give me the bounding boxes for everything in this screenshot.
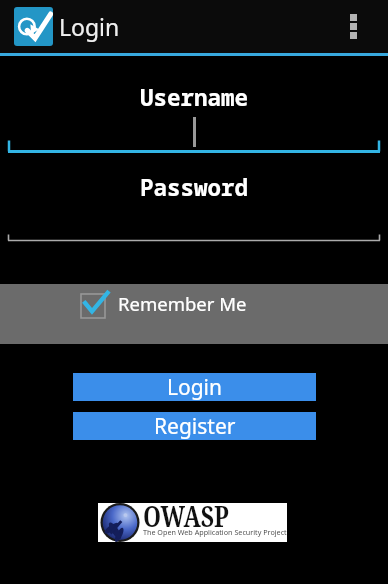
button[interactable] [0, 113, 388, 153]
staticText: Remember Me [118, 291, 247, 316]
staticText: Login [167, 373, 223, 401]
staticText: Login [59, 11, 120, 42]
button[interactable]: Remember Me [0, 284, 388, 344]
button[interactable] [350, 14, 357, 39]
button[interactable]: Register [73, 412, 316, 440]
staticText: Register [154, 412, 236, 440]
button[interactable] [0, 203, 388, 242]
staticText: Username [140, 82, 249, 113]
staticText: Password [140, 172, 249, 203]
staticText: OWASP [143, 497, 229, 535]
button[interactable]: Login [73, 373, 316, 401]
staticText: The Open Web Application Security Projec… [143, 527, 287, 537]
